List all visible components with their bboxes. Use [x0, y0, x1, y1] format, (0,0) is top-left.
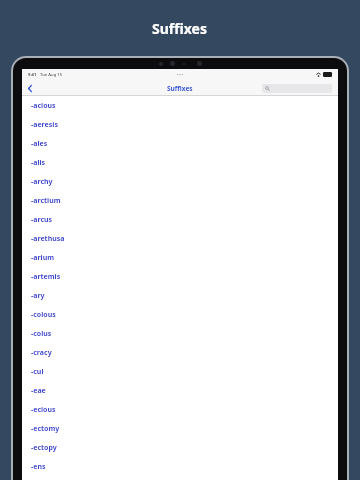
staticText: Suffixes [167, 84, 193, 93]
button[interactable]: -arcus [22, 210, 338, 229]
button[interactable]: -artemis [22, 267, 338, 286]
staticText: -eae [31, 386, 46, 396]
staticText: -artemis [31, 272, 61, 282]
button[interactable]: -arium [22, 248, 338, 267]
button[interactable]: -arethusa [22, 229, 338, 248]
button[interactable]: -colus [22, 324, 338, 343]
staticText: -cracy [31, 348, 52, 358]
staticText: 9:41 [28, 72, 37, 78]
staticText: -acious [31, 101, 56, 111]
staticText: -aeresis [31, 120, 58, 130]
staticText: -alis [31, 158, 46, 168]
staticText: -arium [31, 253, 55, 263]
button[interactable]: -acious [22, 96, 338, 115]
button[interactable]: -ens [22, 457, 338, 476]
button[interactable]: -cracy [22, 343, 338, 362]
button[interactable]: -ectomy [22, 419, 338, 438]
staticText: -arethusa [31, 234, 65, 244]
button[interactable]: -ales [22, 134, 338, 153]
staticText: -ectomy [31, 424, 60, 434]
button[interactable]: -ary [22, 286, 338, 305]
staticText: Suffixes [152, 19, 208, 38]
staticText: -ectopy [31, 443, 57, 453]
staticText: -archy [31, 177, 53, 187]
button[interactable]: Back [22, 80, 38, 96]
staticText: • • • [177, 72, 183, 77]
button[interactable]: -archy [22, 172, 338, 191]
button[interactable]: -aeresis [22, 115, 338, 134]
button[interactable]: -ectopy [22, 438, 338, 457]
staticText: -ales [31, 139, 48, 149]
staticText: -ary [31, 291, 45, 301]
staticText: -arcus [31, 215, 53, 225]
staticText: -ens [31, 462, 46, 472]
button[interactable]: -cul [22, 362, 338, 381]
button[interactable]: -arctium [22, 191, 338, 210]
button[interactable]: -ecious [22, 400, 338, 419]
staticText: -ecious [31, 405, 56, 415]
staticText: Tue Aug 15 [40, 72, 63, 78]
staticText: -colous [31, 310, 56, 320]
button[interactable]: -colous [22, 305, 338, 324]
staticText: -cul [31, 367, 44, 377]
staticText: -arctium [31, 196, 61, 206]
button[interactable]: Search [262, 84, 332, 93]
staticText: -colus [31, 329, 52, 339]
button[interactable]: -alis [22, 153, 338, 172]
button[interactable]: -eae [22, 381, 338, 400]
